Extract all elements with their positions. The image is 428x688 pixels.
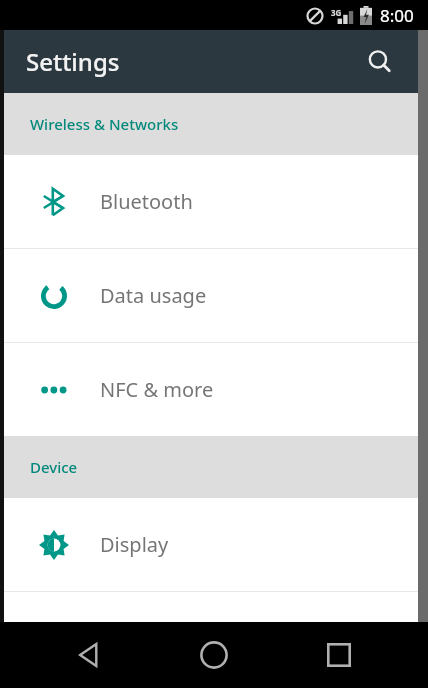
staticText: Device xyxy=(30,457,78,477)
staticText: Data usage xyxy=(100,282,207,309)
staticText: 8:00 xyxy=(380,4,414,27)
button[interactable]: Data usage xyxy=(4,249,418,342)
staticText: Display xyxy=(100,531,169,558)
staticText: Wireless & Networks xyxy=(30,114,179,134)
button[interactable]: Recent apps xyxy=(303,622,375,688)
staticText: Settings xyxy=(26,45,120,78)
staticText: 3G xyxy=(331,7,342,18)
button[interactable]: Back xyxy=(53,622,125,688)
button[interactable]: NFC & more xyxy=(4,343,418,436)
staticText: Bluetooth xyxy=(100,188,193,215)
button[interactable]: Search xyxy=(356,38,404,86)
staticText: NFC & more xyxy=(100,376,214,403)
button[interactable]: Home xyxy=(178,622,250,688)
button[interactable]: Bluetooth xyxy=(4,155,418,248)
button[interactable]: Display xyxy=(4,498,418,591)
